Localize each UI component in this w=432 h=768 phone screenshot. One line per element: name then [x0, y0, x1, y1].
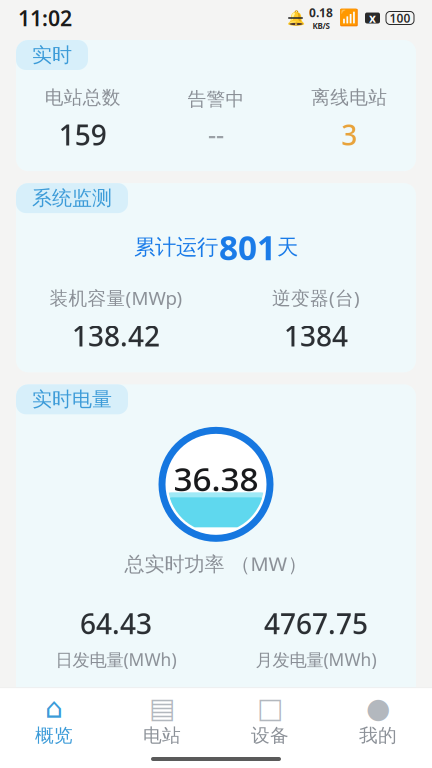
staticText: KB/S [312, 21, 329, 31]
staticText: 11:02 [18, 4, 72, 32]
staticText: 电站总数 [45, 86, 121, 109]
staticText: 概览 [35, 724, 73, 747]
staticText: 📶 [339, 9, 359, 27]
staticText: 设备 [251, 724, 289, 747]
staticText: ▤ [149, 692, 175, 724]
staticText: 电站 [143, 724, 181, 747]
staticText: 逆变器(台) [272, 285, 360, 310]
staticText: 天 [277, 234, 298, 260]
button[interactable]: ▤ [108, 688, 216, 753]
staticText: 138.42 [72, 317, 160, 354]
staticText: ● [366, 692, 390, 724]
staticText: 装机容量(MWp) [49, 285, 182, 310]
staticText: 801 [219, 225, 276, 269]
staticText: 离线电站 [311, 86, 387, 109]
button[interactable]: ⌂ [0, 688, 108, 753]
staticText: □ [257, 692, 283, 724]
staticText: x [369, 10, 376, 26]
staticText: 总实时功率 （MW） [124, 550, 307, 577]
staticText: 告警中 [187, 88, 244, 111]
staticText: 107353.63 [248, 689, 384, 726]
staticText: 月发电量(MWh) [255, 648, 376, 671]
staticText: 日发电量(MWh) [55, 648, 176, 671]
staticText: -- [208, 118, 224, 151]
button[interactable]: ● [324, 688, 432, 753]
staticText: 🔔 [286, 10, 304, 26]
staticText: 100 [389, 10, 410, 26]
staticText: 159 [59, 116, 107, 153]
button[interactable]: □ [216, 688, 324, 753]
staticText: 实时 [32, 43, 72, 67]
staticText: ⌂ [45, 692, 63, 724]
staticText: 64.43 [80, 605, 152, 642]
staticText: 12056.86 [56, 689, 176, 726]
staticText: 我的 [359, 724, 397, 747]
staticText: 3 [341, 116, 357, 153]
staticText: 36.38 [173, 456, 258, 500]
staticText: 0.18 [309, 5, 333, 21]
staticText: 实时电量 [32, 387, 112, 412]
staticText: 累计运行 [134, 234, 218, 260]
staticText: 1384 [284, 317, 348, 354]
staticText: 总发电量(MWh) [255, 732, 376, 755]
staticText: 年发电量(MWh) [55, 732, 176, 755]
staticText: 系统监测 [32, 186, 112, 210]
staticText: 4767.75 [264, 605, 368, 642]
